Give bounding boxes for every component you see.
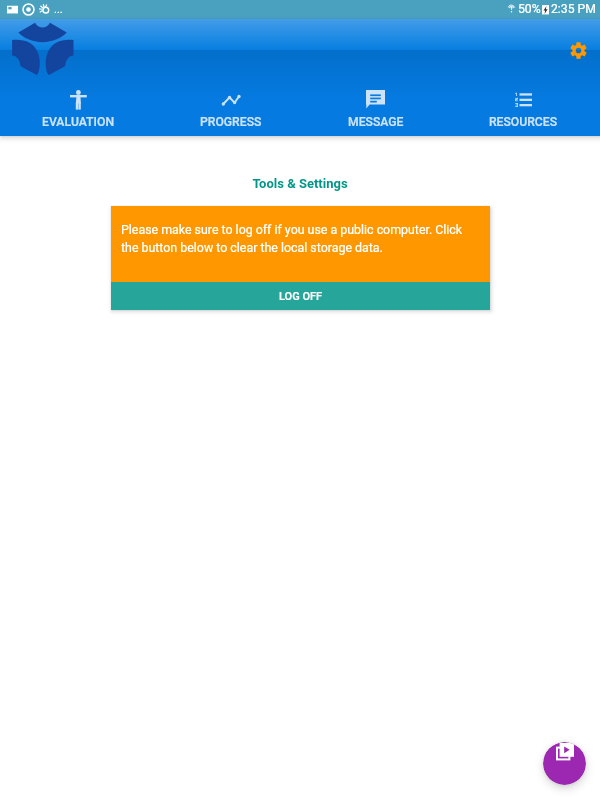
button[interactable]: LOG OFF [111,282,490,310]
button[interactable]: Video library [543,742,586,785]
staticText: Tools & Settings [0,176,600,191]
button[interactable]: EVALUATION [0,80,157,136]
staticText: EVALUATION [42,115,115,129]
staticText: MESSAGE [348,115,404,129]
button[interactable]: MESSAGE [304,80,447,136]
staticText: 2:35 PM [551,2,596,16]
staticText: ... [54,3,63,16]
button[interactable]: PROGRESS [157,80,304,136]
staticText: RESOURCES [489,115,558,129]
button[interactable]: Settings [566,38,591,63]
staticText: Please make sure to log off if you use a… [121,222,478,255]
staticText: PROGRESS [200,115,262,129]
button[interactable]: RESOURCES [447,80,600,136]
staticText: 50% [518,2,541,16]
staticText: LOG OFF [279,290,323,303]
